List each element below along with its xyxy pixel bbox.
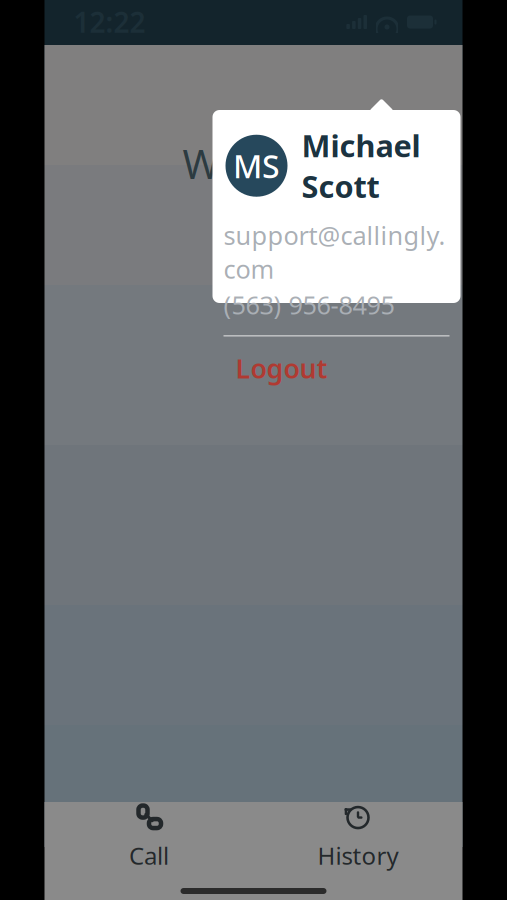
staticText: 12:22 xyxy=(73,3,145,41)
staticText: (563) 956-8495 xyxy=(223,288,394,321)
staticText: Call xyxy=(129,840,169,871)
staticText: Waiting xyxy=(182,137,324,190)
button[interactable]: Call xyxy=(44,802,253,874)
staticText: Logout xyxy=(235,350,327,386)
button[interactable]: Logout xyxy=(212,340,460,396)
button[interactable]: Michael Scott xyxy=(239,40,462,94)
staticText: support@callingly.com xyxy=(223,218,445,286)
staticText: MS xyxy=(233,144,280,187)
staticText: Michael Scott xyxy=(301,125,420,206)
staticText: History xyxy=(317,840,398,871)
button[interactable]: Callingly Home xyxy=(44,39,221,95)
button[interactable]: History xyxy=(253,802,462,874)
